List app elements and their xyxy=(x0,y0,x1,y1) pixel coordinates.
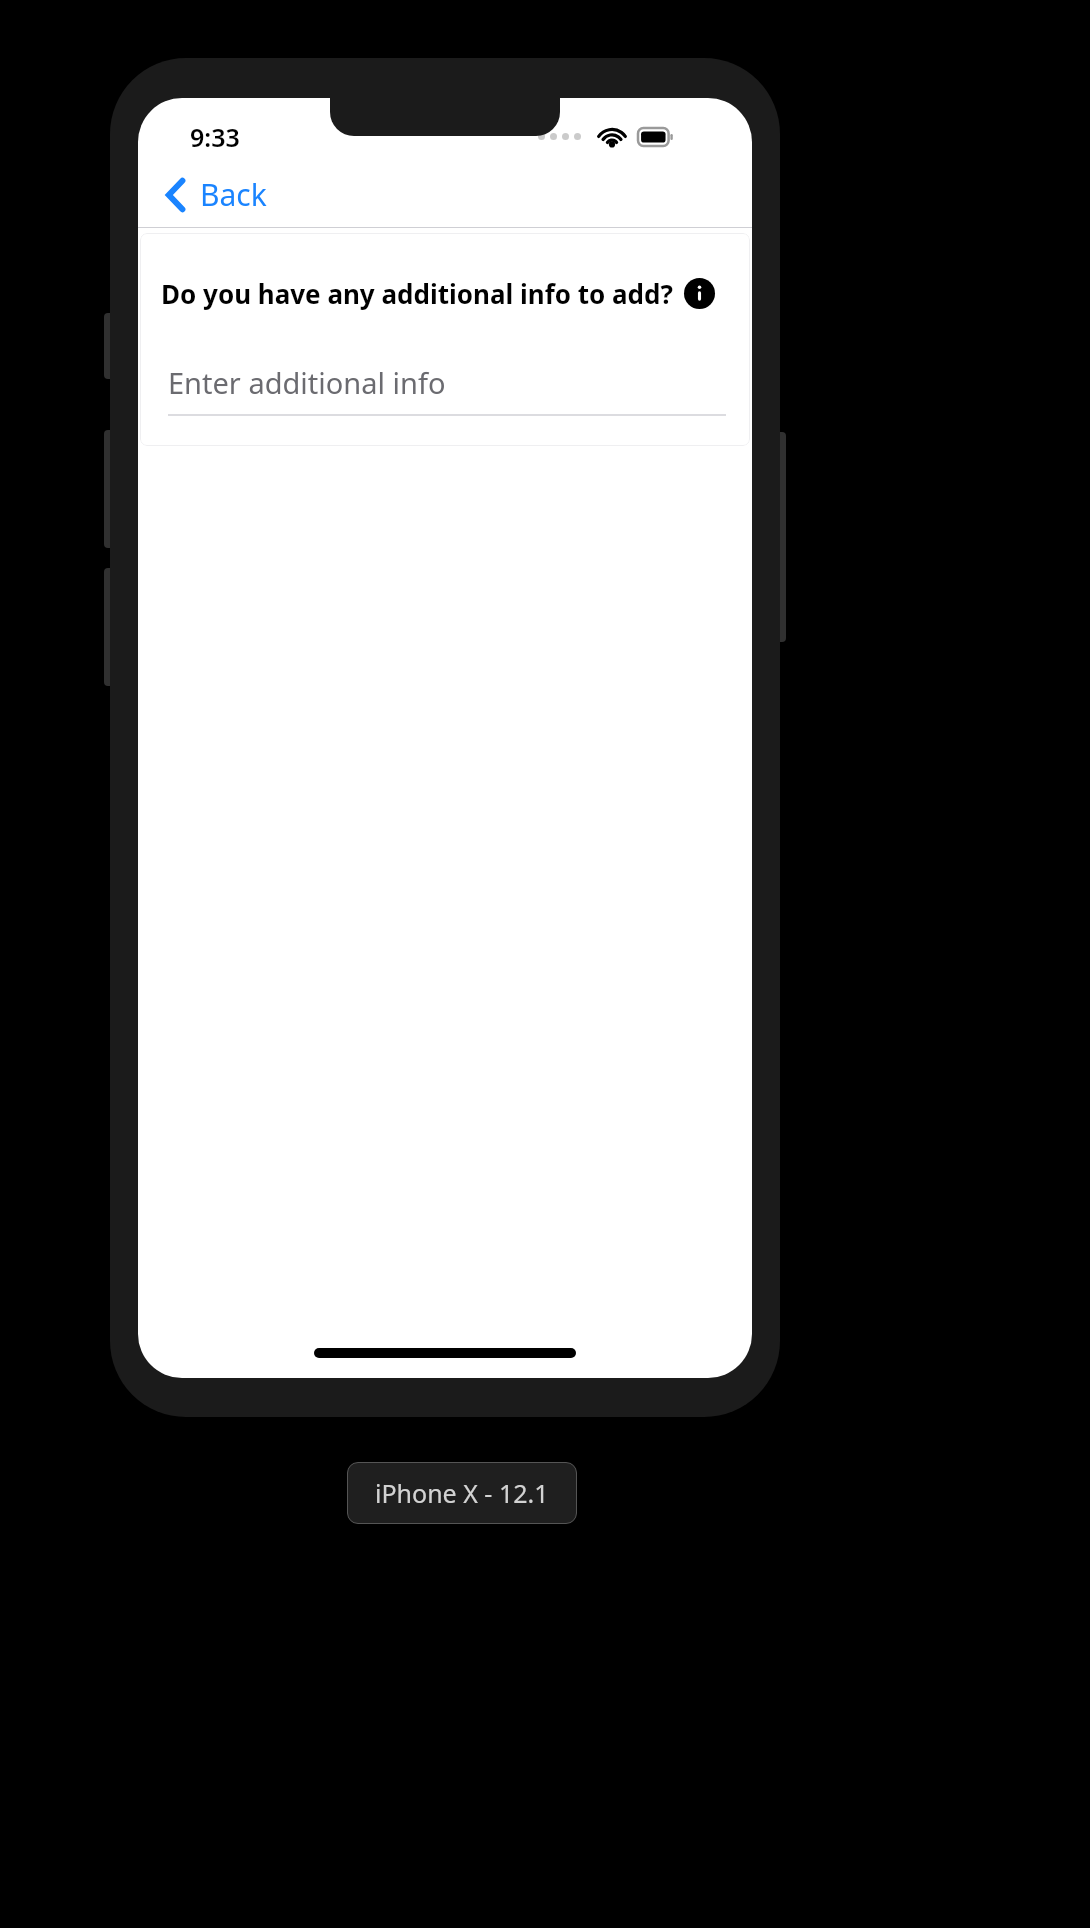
button[interactable]: iPhone X - 12.1 xyxy=(347,1462,577,1524)
staticText: 9:33 xyxy=(190,120,240,154)
staticText: Do you have any additional info to add? xyxy=(161,276,673,311)
staticText: Back xyxy=(200,174,267,215)
staticText: Enter additional info xyxy=(168,363,446,402)
button[interactable]: Back xyxy=(158,168,275,221)
button[interactable]: More information xyxy=(684,278,715,309)
staticText: iPhone X - 12.1 xyxy=(375,1476,549,1510)
button[interactable]: Enter additional info xyxy=(168,363,726,416)
